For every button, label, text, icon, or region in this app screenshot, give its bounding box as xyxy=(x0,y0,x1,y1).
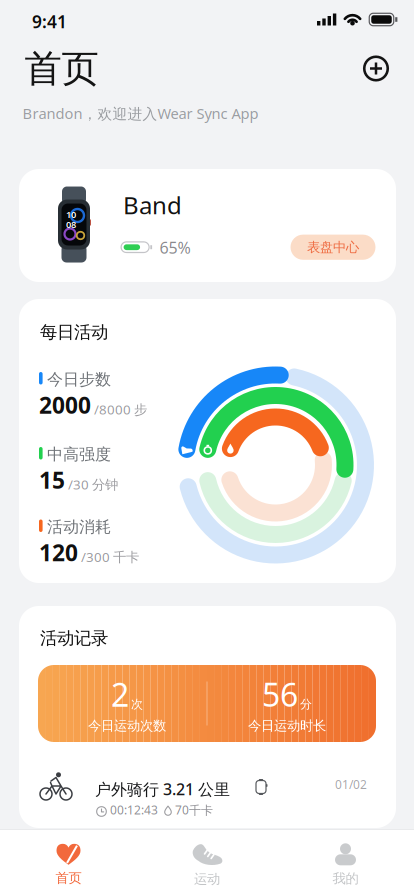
staticText: 我的 xyxy=(332,870,358,887)
staticText: /30 分钟 xyxy=(68,475,118,493)
staticText: 00:12:43 xyxy=(110,802,158,818)
staticText: 分 xyxy=(300,697,312,711)
staticText: 中高强度 xyxy=(47,444,111,464)
staticText: 120 xyxy=(39,537,78,568)
button[interactable]: 表盘中心 xyxy=(290,235,375,260)
staticText: 表盘中心 xyxy=(307,239,359,255)
staticText: 2 xyxy=(111,673,129,716)
staticText: /8000 步 xyxy=(94,400,147,418)
staticText: Band xyxy=(123,189,182,221)
staticText: 户外骑行 3.21 公里 xyxy=(95,778,230,800)
staticText: 首页 xyxy=(55,870,81,886)
staticText: 运动 xyxy=(194,871,220,887)
button[interactable]: 我的 xyxy=(300,837,390,893)
staticText: /300 千卡 xyxy=(81,548,139,566)
staticText: 15 xyxy=(39,465,65,495)
button[interactable] xyxy=(361,53,391,83)
staticText: 首页 xyxy=(24,46,98,92)
staticText: 10 xyxy=(66,208,76,221)
button[interactable]: 运动 xyxy=(162,837,252,893)
button[interactable]: 首页 xyxy=(23,837,113,893)
staticText: 9:41 xyxy=(32,10,67,33)
staticText: 2000 xyxy=(39,390,91,420)
button[interactable]: 户外骑行 3.21 公里 xyxy=(19,606,396,828)
staticText: 56 xyxy=(262,673,298,716)
staticText: 01/02 xyxy=(335,776,367,792)
staticText: 08 xyxy=(66,218,76,231)
staticText: 65% xyxy=(159,237,190,258)
staticText: 次 xyxy=(131,697,143,711)
staticText: Brandon，欢迎进入Wear Sync App xyxy=(22,103,258,123)
staticText: 活动消耗 xyxy=(47,517,111,537)
staticText: 70千卡 xyxy=(175,802,213,818)
button[interactable]: 10 xyxy=(19,169,396,282)
staticText: 今日步数 xyxy=(47,369,111,389)
staticText: 每日活动 xyxy=(40,321,108,343)
staticText: 今日运动次数 xyxy=(88,718,166,734)
staticText: 今日运动时长 xyxy=(248,718,326,734)
staticText: 活动记录 xyxy=(40,627,108,649)
